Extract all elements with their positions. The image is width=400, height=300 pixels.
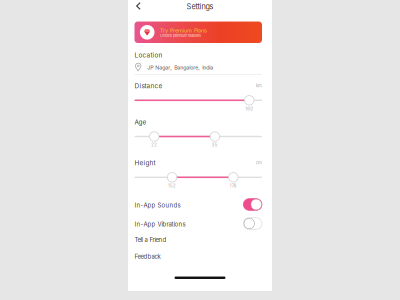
button[interactable]: Back — [132, 0, 145, 12]
staticText: 35 — [212, 143, 218, 148]
staticText: Tell a Friend — [134, 236, 166, 243]
staticText: Unlock premium features — [160, 33, 201, 38]
staticText: cm — [256, 160, 262, 165]
staticText: Location — [134, 51, 162, 59]
staticText: Feedback — [134, 253, 160, 260]
button[interactable]: JP Nagar, Bangalore, India — [134, 60, 262, 74]
button[interactable]: In-App Vibrations — [134, 215, 262, 231]
staticText: JP Nagar, Bangalore, India — [147, 64, 213, 71]
staticText: 152 — [168, 183, 176, 188]
button[interactable]: In-App Sounds — [134, 196, 262, 212]
staticText: 160 — [245, 106, 253, 111]
staticText: 178 — [230, 183, 237, 188]
staticText: 22 — [151, 143, 157, 148]
staticText: km — [256, 83, 262, 88]
staticText: Distance — [134, 82, 162, 90]
staticText: Age — [134, 118, 146, 126]
staticText: Settings — [186, 2, 213, 11]
staticText: Try Premium Plans — [160, 27, 207, 34]
button[interactable]: Feedback — [134, 249, 262, 263]
button[interactable]: Tell a Friend — [134, 232, 262, 246]
button[interactable]: Try Premium Plans — [134, 21, 262, 43]
staticText: In-App Vibrations — [134, 221, 185, 228]
staticText: Height — [134, 159, 155, 167]
staticText: In-App Sounds — [134, 202, 180, 209]
